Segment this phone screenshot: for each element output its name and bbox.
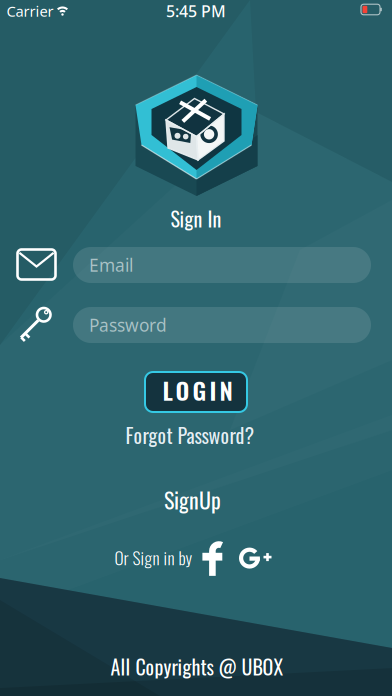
staticText: Carrier (6, 1, 53, 21)
staticText: Email (89, 253, 133, 276)
staticText: Or Sign in by (114, 545, 192, 570)
button[interactable]: Forgot Password? (125, 420, 254, 450)
button[interactable]: Sign in with Facebook (202, 539, 224, 576)
button[interactable]: LOGIN (145, 372, 247, 412)
button[interactable]: SignUp (164, 483, 221, 516)
staticText: Forgot Password? (125, 420, 254, 450)
staticText: 5:45 PM (166, 0, 226, 22)
staticText: LOGIN (162, 372, 232, 408)
staticText: All Copyrights @ UBOX (110, 652, 283, 681)
button[interactable]: Sign in with Google (238, 547, 272, 569)
staticText: SignUp (164, 483, 221, 516)
button[interactable]: Password (73, 307, 371, 343)
button[interactable]: Email (73, 247, 371, 283)
staticText: Password (89, 313, 167, 336)
staticText: Sign In (170, 204, 221, 233)
